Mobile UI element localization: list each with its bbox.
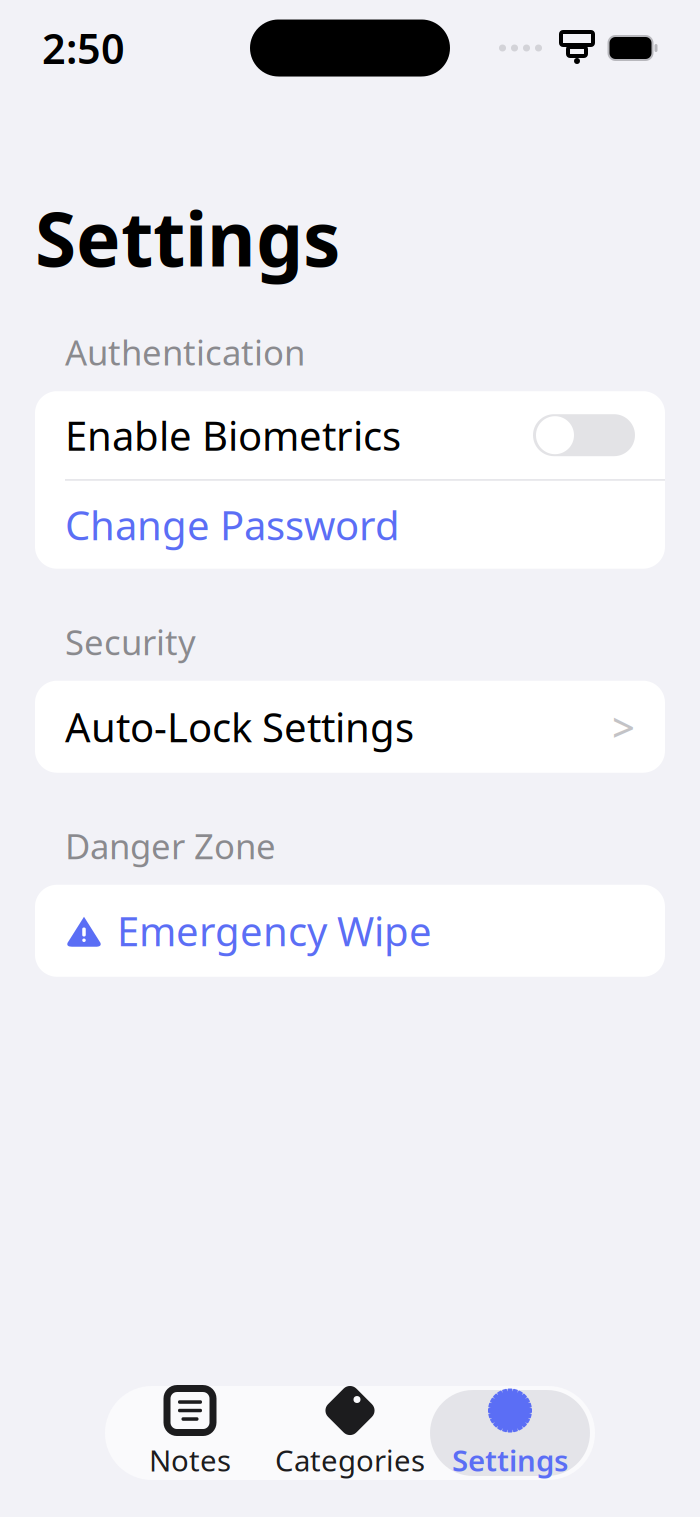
staticText: Notes: [149, 1440, 231, 1479]
button[interactable]: Notes: [110, 1390, 270, 1476]
staticText: >: [612, 700, 635, 753]
button[interactable]: Auto-Lock Settings: [35, 681, 665, 773]
staticText: Change Password: [65, 498, 400, 551]
button[interactable]: Change Password: [35, 481, 665, 569]
button[interactable]: Categories: [270, 1390, 430, 1476]
staticText: Auto-Lock Settings: [65, 700, 414, 753]
button[interactable]: Enable Biometrics: [35, 391, 665, 479]
staticText: Enable Biometrics: [65, 409, 401, 462]
staticText: Danger Zone: [65, 823, 276, 869]
staticText: Emergency Wipe: [117, 904, 432, 957]
button[interactable]: Settings: [430, 1390, 590, 1476]
staticText: Security: [65, 619, 196, 665]
staticText: Settings: [452, 1440, 568, 1479]
staticText: Authentication: [65, 329, 305, 375]
staticText: Categories: [275, 1440, 425, 1479]
button[interactable]: Emergency Wipe: [35, 885, 665, 977]
staticText: 2:50: [42, 21, 125, 75]
staticText: Settings: [35, 188, 340, 287]
